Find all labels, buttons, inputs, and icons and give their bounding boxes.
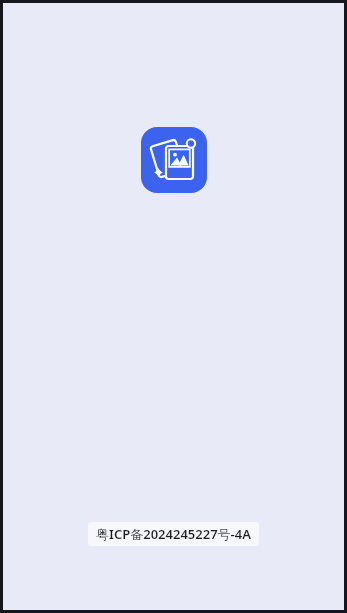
button[interactable]: Open app	[141, 127, 207, 193]
staticText: 粤ICP备2024245227号-4A	[96, 525, 251, 543]
button[interactable]: 粤ICP备2024245227号-4A	[88, 522, 259, 546]
